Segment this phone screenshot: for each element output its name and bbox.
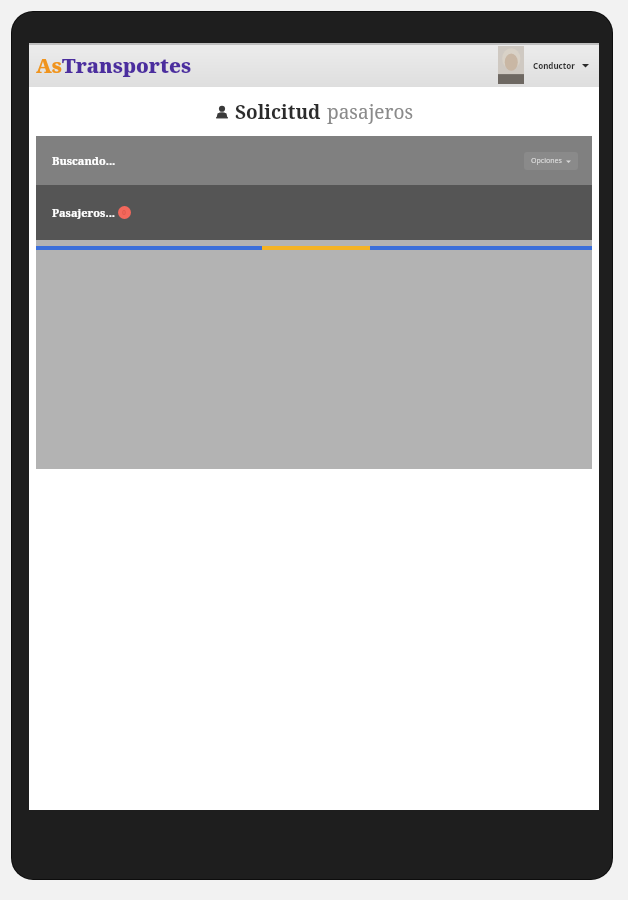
staticText: 0 [122, 208, 127, 218]
staticText: Opciones [531, 156, 562, 166]
button[interactable]: As [36, 52, 191, 79]
staticText: Pasajeros... [52, 205, 116, 220]
staticText: Conductor [533, 60, 575, 71]
staticText: Transportes [62, 52, 191, 79]
button[interactable]: Buscando... [36, 136, 592, 185]
staticText: Buscando... [52, 153, 116, 168]
staticText: As [36, 52, 62, 79]
button[interactable]: Foto de perfil [498, 46, 589, 84]
button[interactable]: Pasajeros... [36, 185, 592, 240]
staticText: pasajeros [327, 99, 413, 125]
staticText: Solicitud [235, 99, 321, 125]
other: Foto de perfil [498, 46, 524, 84]
button[interactable]: Opciones [524, 152, 578, 170]
